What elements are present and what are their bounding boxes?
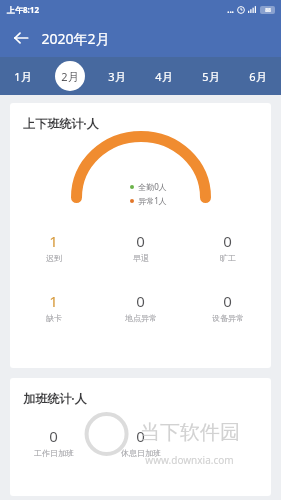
staticText: 休息日加班 [121,448,161,458]
staticText: 3月 [108,69,126,84]
staticText: www.downxia.com [145,453,234,467]
staticText: 设备异常 [212,313,244,323]
staticText: 加班统计·人 [23,390,87,406]
staticText: 旷工 [220,253,236,263]
button[interactable]: 4月 [140,57,187,95]
button[interactable]: 0 [97,426,184,458]
button[interactable]: 1 [10,231,97,263]
button[interactable]: 3月 [93,57,140,95]
staticText: 工作日加班 [34,448,74,458]
staticText: 缺卡 [46,313,62,323]
button[interactable]: 2月 [46,57,93,95]
staticText: 6月 [249,69,267,84]
button[interactable]: 加班统计·人 [10,378,271,496]
staticText: 0 [49,426,58,446]
staticText: 2020年2月 [41,29,110,48]
staticText: 1 [49,231,58,251]
button[interactable]: 0 [184,231,271,263]
staticText: 异常1人 [138,195,167,206]
staticText: 0 [223,291,232,311]
button[interactable]: Back [8,25,34,51]
button[interactable]: 5月 [187,57,234,95]
button[interactable]: 0 [10,426,97,458]
staticText: 迟到 [46,253,62,263]
staticText: ... [227,4,234,15]
staticText: 早退 [133,253,149,263]
staticText: 0 [136,231,145,251]
staticText: 1 [49,291,58,311]
staticText: 5月 [202,69,220,84]
staticText: 0 [223,231,232,251]
staticText: 2月 [61,69,79,84]
staticText: 88 [265,7,271,14]
staticText: 地点异常 [125,313,157,323]
button[interactable]: 0 [97,231,184,263]
staticText: 0 [136,426,145,446]
staticText: 全勤0人 [138,181,167,192]
button[interactable]: 上下班统计·人 [10,103,271,368]
staticText: 当下软件园 [140,420,240,445]
staticText: 1月 [14,69,32,84]
staticText: 上午8:12 [7,4,39,15]
staticText: 0 [136,291,145,311]
button[interactable]: 6月 [234,57,281,95]
button[interactable]: 0 [97,291,184,323]
button[interactable]: 0 [184,291,271,323]
staticText: 上下班统计·人 [23,115,99,131]
staticText: 4月 [155,69,173,84]
button[interactable]: 1月 [0,57,46,95]
button[interactable]: 1 [10,291,97,323]
